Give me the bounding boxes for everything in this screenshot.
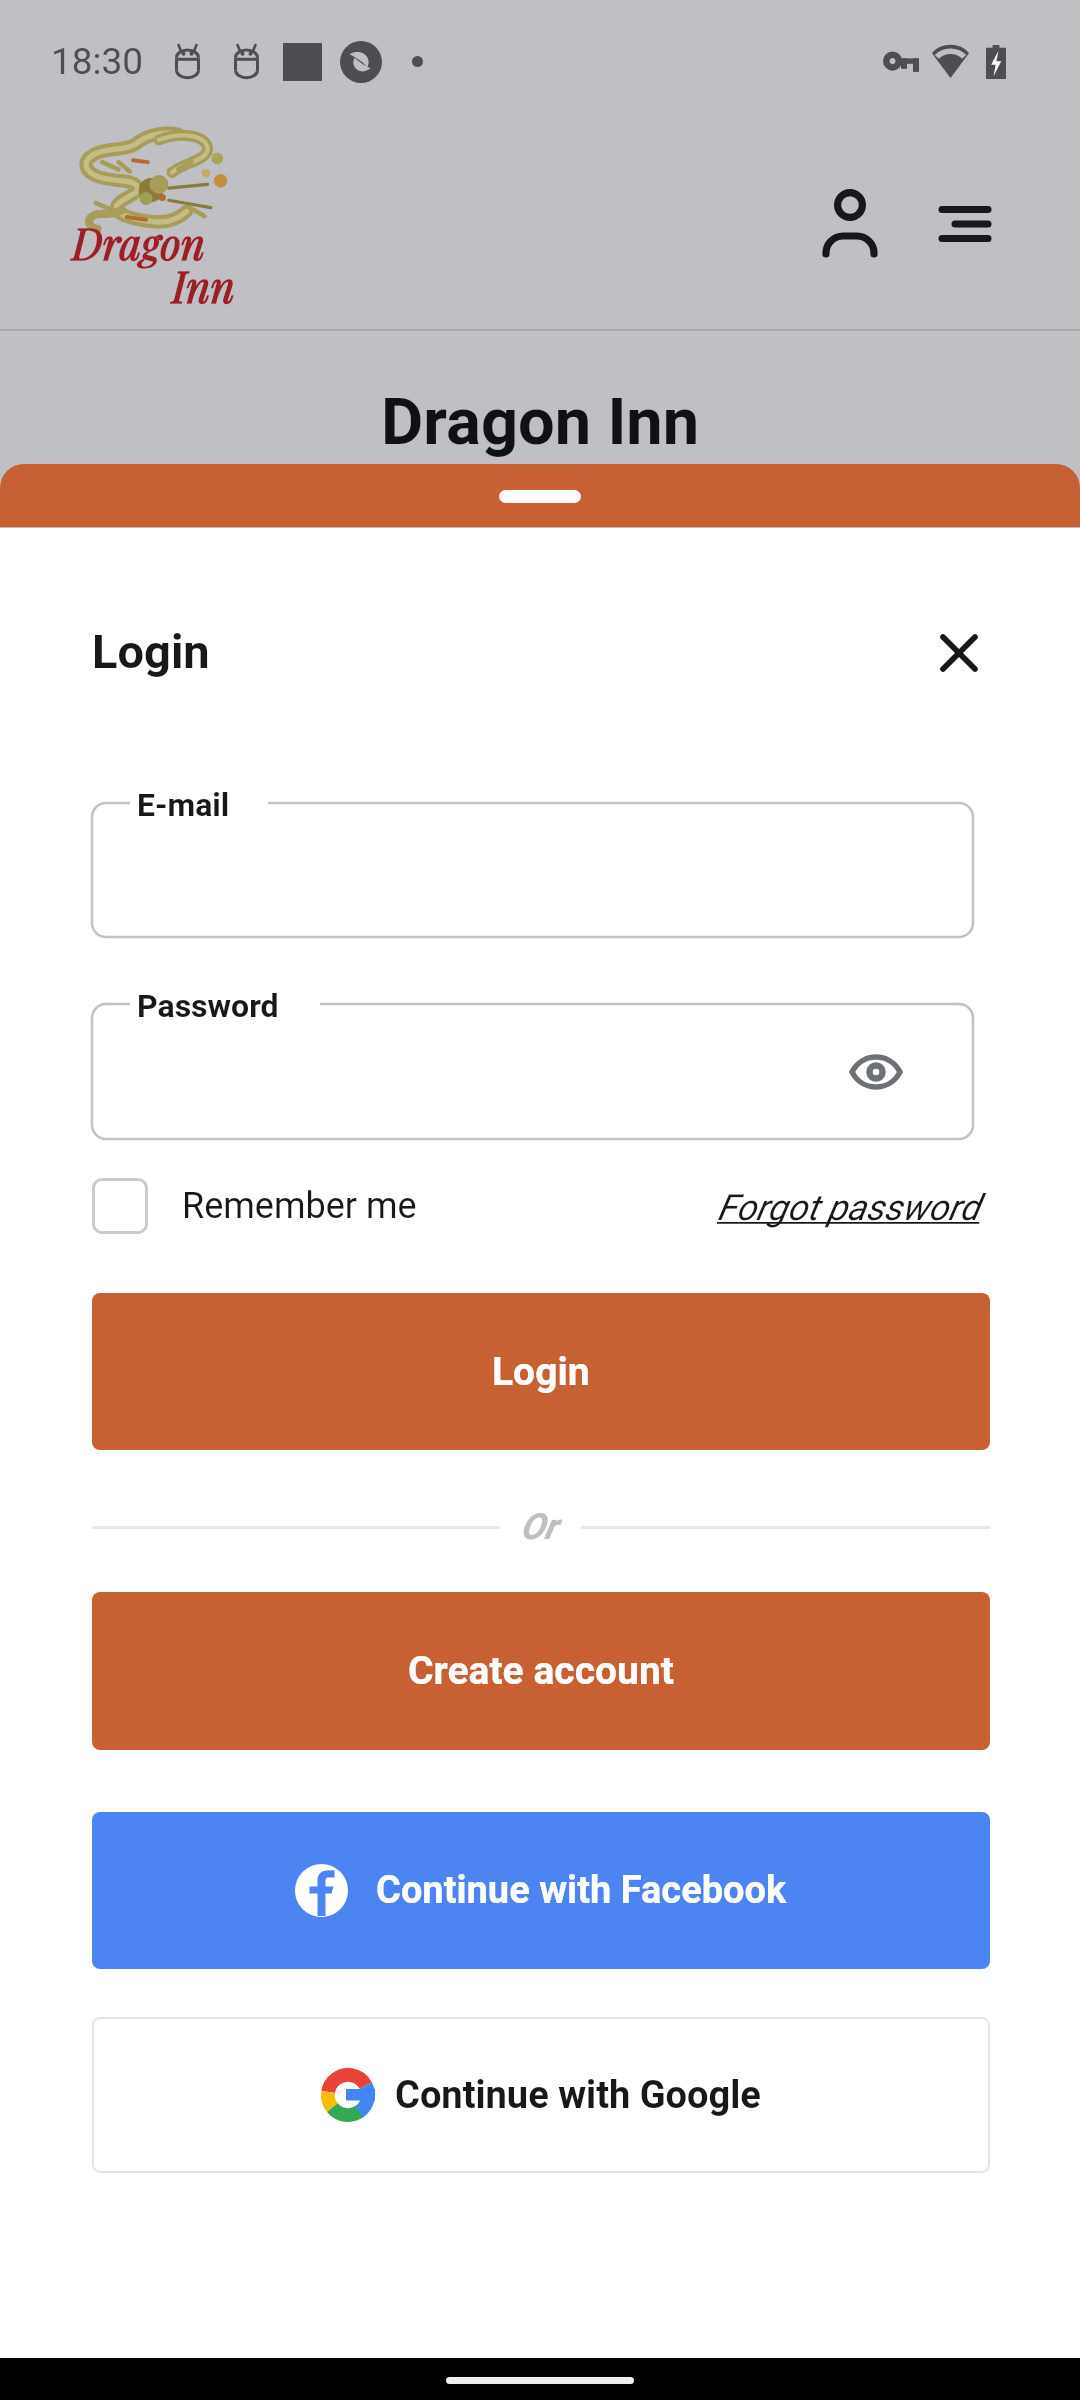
staticText: Login: [492, 1349, 590, 1395]
staticText: Continue with Facebook: [376, 1868, 787, 1913]
button[interactable]: Close: [927, 621, 991, 685]
staticText: Continue with Google: [395, 2073, 761, 2118]
staticText: Forgot password: [717, 1187, 980, 1229]
staticText: E-mail: [137, 786, 230, 824]
button[interactable]: Create account: [92, 1592, 990, 1750]
button[interactable]: Password: [92, 1004, 973, 1139]
button[interactable]: Menu: [925, 184, 1005, 264]
button[interactable]: Continue with Facebook: [92, 1812, 990, 1969]
staticText: Remember me: [182, 1185, 417, 1227]
staticText: 18:30: [51, 40, 144, 83]
button[interactable]: Continue with Google: [92, 2017, 990, 2173]
staticText: Or: [520, 1506, 557, 1548]
staticText: Password: [137, 987, 279, 1025]
button[interactable]: E-mail: [92, 803, 973, 937]
button[interactable]: Forgot password: [717, 1184, 980, 1232]
staticText: Dragon: [72, 215, 206, 271]
button[interactable]: Account: [806, 178, 894, 266]
button[interactable]: Show password: [842, 1038, 910, 1106]
staticText: Login: [92, 624, 210, 679]
button[interactable]: Remember me: [92, 1178, 482, 1234]
staticText: Dragon Inn: [381, 384, 700, 460]
staticText: Create account: [408, 1648, 674, 1694]
staticText: Inn: [172, 258, 235, 314]
button[interactable]: Login: [92, 1293, 990, 1450]
